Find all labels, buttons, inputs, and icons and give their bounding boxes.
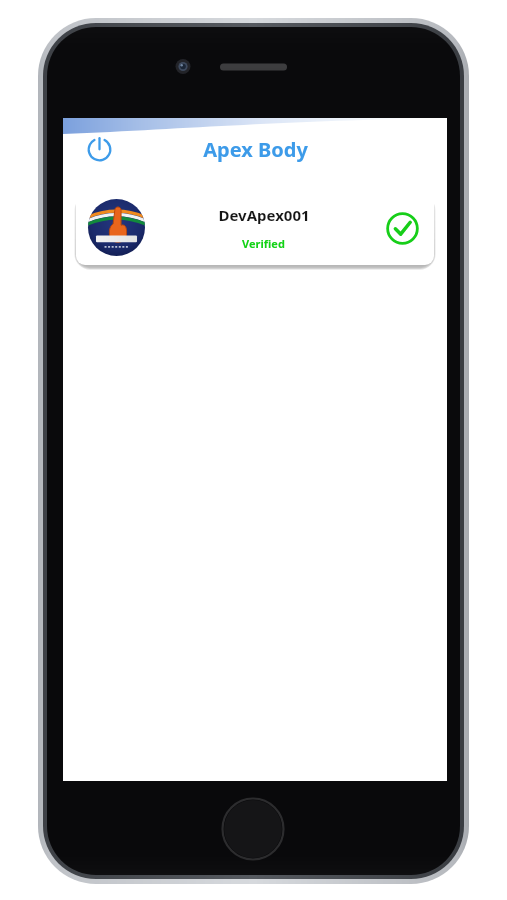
button[interactable]: Logout [79, 129, 119, 169]
staticText: DevApex001 [218, 205, 310, 225]
button[interactable]: DevApex001 [76, 190, 434, 265]
staticText: Verified [242, 236, 285, 251]
button[interactable]: Verified [382, 208, 422, 248]
staticText: Apex Body [203, 136, 308, 163]
